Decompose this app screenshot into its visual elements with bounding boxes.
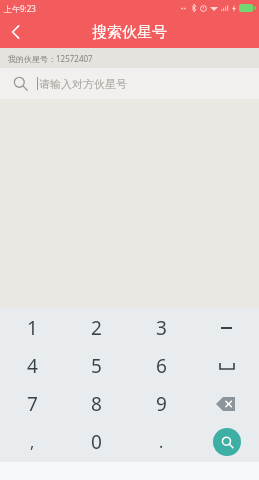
staticText: 9 bbox=[156, 391, 167, 417]
button[interactable]: 5 bbox=[64, 348, 129, 384]
staticText: . bbox=[159, 431, 164, 453]
staticText: 7 bbox=[27, 391, 38, 417]
staticText: 3 bbox=[156, 315, 167, 341]
button[interactable]: 4 bbox=[0, 348, 64, 384]
staticText: 5 bbox=[91, 353, 102, 379]
staticText: , bbox=[30, 431, 35, 453]
button[interactable]: 6 bbox=[129, 348, 194, 384]
button[interactable]: 7 bbox=[0, 386, 64, 422]
button[interactable]: Dash bbox=[194, 310, 259, 346]
button[interactable]: 0 bbox=[64, 424, 129, 460]
staticText: 我的伙星号：12572407 bbox=[8, 53, 93, 64]
staticText: 6 bbox=[156, 353, 167, 379]
button[interactable]: Backspace bbox=[194, 386, 259, 422]
staticText: 0 bbox=[91, 429, 102, 455]
button[interactable]: , bbox=[0, 424, 64, 460]
staticText: 搜索伙星号 bbox=[92, 23, 167, 42]
button[interactable]: 1 bbox=[0, 310, 64, 346]
button[interactable]: . bbox=[129, 424, 194, 460]
button[interactable]: 9 bbox=[129, 386, 194, 422]
button[interactable]: 3 bbox=[129, 310, 194, 346]
button[interactable]: 2 bbox=[64, 310, 129, 346]
button[interactable]: Search bbox=[194, 424, 259, 460]
staticText: 8 bbox=[91, 391, 102, 417]
staticText: 上午9:23 bbox=[4, 3, 36, 14]
button[interactable]: 请输入对方伙星号 bbox=[0, 68, 259, 99]
staticText: 4 bbox=[27, 353, 38, 379]
staticText: 1 bbox=[27, 315, 38, 341]
button[interactable]: Space bbox=[194, 348, 259, 384]
staticText: 2 bbox=[91, 315, 102, 341]
staticText: 请输入对方伙星号 bbox=[39, 77, 127, 91]
button[interactable]: 8 bbox=[64, 386, 129, 422]
button[interactable]: Back bbox=[0, 16, 32, 48]
